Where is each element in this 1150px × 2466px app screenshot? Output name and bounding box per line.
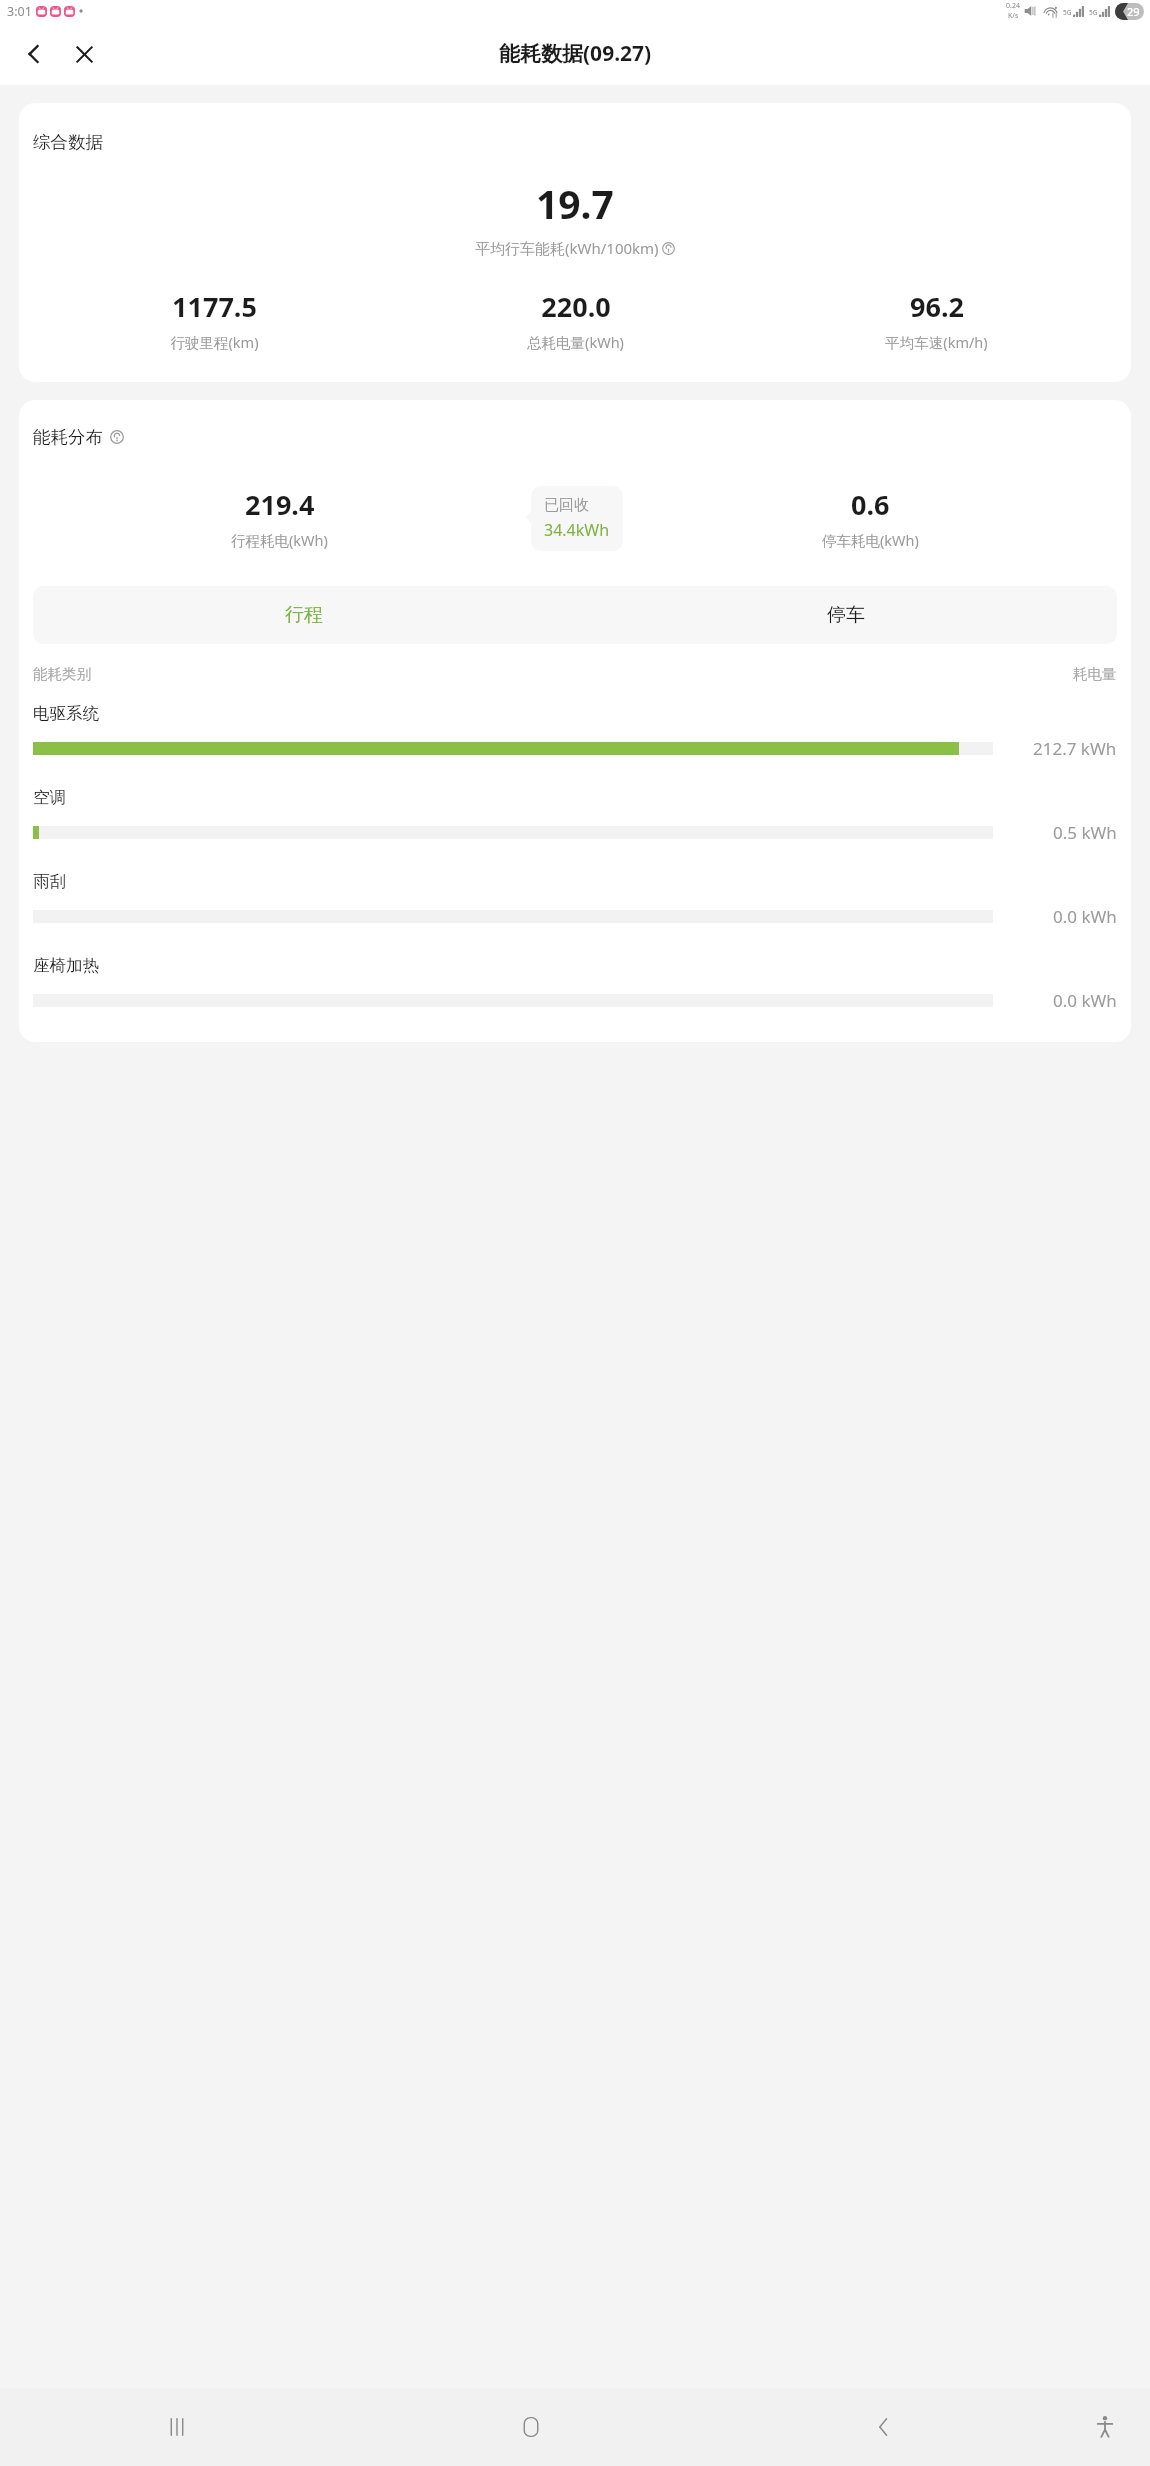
staticText: 停车 (827, 603, 865, 627)
staticText: 空调 (33, 787, 66, 808)
staticText: 能耗分布 (33, 426, 103, 448)
staticText: 0.24 (1006, 1, 1020, 11)
staticText: 行驶里程(km) (170, 332, 259, 352)
button[interactable]: 座椅加热 (33, 955, 1117, 1012)
button[interactable]: Back (12, 32, 56, 76)
staticText: 综合数据 (33, 131, 103, 153)
staticText: 已回收 (544, 496, 589, 515)
button[interactable]: Home (354, 2388, 707, 2466)
staticText: 行程耗电(kWh) (231, 530, 328, 550)
staticText: 0.6 (851, 486, 890, 523)
staticText: 5G (1063, 8, 1072, 17)
button[interactable]: Recent apps (0, 2388, 354, 2466)
staticText: 1177.5 (172, 288, 257, 325)
staticText: 平均车速(km/h) (885, 332, 988, 352)
staticText: 行程 (285, 603, 323, 627)
staticText: 19.7 (536, 177, 614, 230)
staticText: 3:01 (7, 3, 32, 20)
staticText: 能耗类别 (33, 665, 91, 683)
button[interactable]: 空调 (33, 787, 1117, 844)
staticText: 雨刮 (33, 871, 66, 892)
staticText: 耗电量 (1073, 665, 1117, 683)
staticText: 能耗数据(09.27) (499, 39, 652, 68)
staticText: 0.0 kWh (1053, 989, 1117, 1012)
staticText: 29 (1127, 4, 1140, 19)
staticText: 座椅加热 (33, 955, 99, 976)
staticText: 总耗电量(kWh) (527, 332, 624, 352)
staticText: 平均行车能耗(kWh/100km) (475, 238, 659, 258)
staticText: K/s (1008, 11, 1019, 21)
staticText: 219.4 (245, 486, 315, 523)
staticText: 停车耗电(kWh) (822, 530, 919, 550)
staticText: 0.0 kWh (1053, 905, 1117, 928)
button[interactable]: Accessibility (1060, 2388, 1150, 2466)
staticText: 0.5 kWh (1053, 821, 1117, 844)
button[interactable]: 行程 (33, 586, 575, 644)
staticText: 电驱系统 (33, 703, 99, 724)
button[interactable]: Close (62, 32, 106, 76)
button[interactable]: 雨刮 (33, 871, 1117, 928)
staticText: 212.7 kWh (1033, 737, 1117, 760)
staticText: 96.2 (910, 288, 964, 325)
button[interactable]: Back (707, 2388, 1060, 2466)
staticText: 220.0 (541, 288, 611, 325)
button[interactable]: 电驱系统 (33, 703, 1117, 760)
staticText: 5G (1089, 8, 1098, 17)
button[interactable]: 停车 (575, 586, 1117, 644)
staticText: 34.4kWh (544, 519, 610, 541)
